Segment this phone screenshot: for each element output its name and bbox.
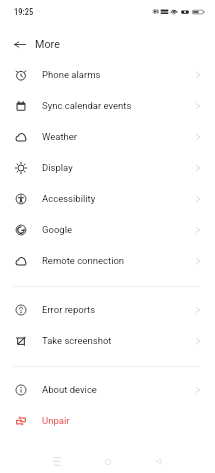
staticText: About device — [42, 384, 196, 395]
button[interactable]: Accessibility — [0, 183, 215, 214]
staticText: Phone alarms — [42, 69, 196, 80]
staticText: Take screenshot — [42, 335, 196, 346]
button[interactable]: Google — [0, 214, 215, 245]
staticText: More — [35, 38, 60, 51]
button[interactable]: Unpair — [0, 405, 215, 436]
button[interactable]: Home — [96, 450, 119, 473]
button[interactable]: Display — [0, 152, 215, 183]
button[interactable]: Sync calendar events — [0, 90, 215, 121]
button[interactable]: Remote connection — [0, 245, 215, 276]
staticText: Remote connection — [42, 255, 196, 266]
button[interactable]: Back — [8, 33, 31, 56]
button[interactable]: Back — [147, 450, 170, 473]
button[interactable]: Phone alarms — [0, 59, 215, 90]
staticText: Google — [42, 224, 196, 235]
staticText: Display — [42, 162, 196, 173]
button[interactable]: Recent apps — [45, 450, 68, 473]
staticText: Accessibility — [42, 193, 196, 204]
button[interactable]: About device — [0, 374, 215, 405]
staticText: Weather — [42, 131, 196, 142]
button[interactable]: Take screenshot — [0, 325, 215, 356]
staticText: Sync calendar events — [42, 100, 196, 111]
staticText: Error reports — [42, 304, 196, 315]
staticText: 19:25 — [14, 7, 34, 17]
staticText: Unpair — [42, 415, 197, 426]
button[interactable]: Weather — [0, 121, 215, 152]
button[interactable]: Error reports — [0, 294, 215, 325]
